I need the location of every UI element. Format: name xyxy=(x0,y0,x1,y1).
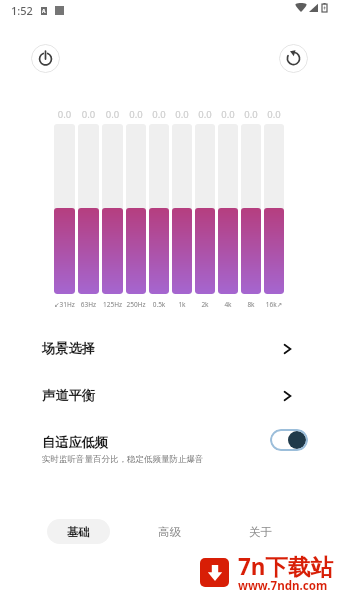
staticText: 0.0 xyxy=(102,108,123,121)
button[interactable] xyxy=(54,124,75,294)
button[interactable]: 声道平衡 xyxy=(0,372,338,419)
staticText: 125Hz xyxy=(102,300,123,309)
button[interactable] xyxy=(218,124,238,294)
button[interactable] xyxy=(126,124,146,294)
button[interactable] xyxy=(241,124,261,294)
staticText: 关于 xyxy=(249,525,272,539)
staticText: 0.0 xyxy=(149,108,169,121)
button[interactable]: 高级 xyxy=(138,519,201,544)
staticText: 2k xyxy=(195,300,215,309)
staticText: 自适应低频 xyxy=(42,434,108,451)
button[interactable]: 场景选择 xyxy=(0,325,338,372)
staticText: www.7ndn.com xyxy=(238,578,328,594)
staticText: ↙31Hz xyxy=(54,300,75,309)
staticText: 16k↗ xyxy=(264,300,284,309)
staticText: 250Hz xyxy=(126,300,146,309)
staticText: 场景选择 xyxy=(42,340,95,357)
staticText: 高级 xyxy=(158,525,181,539)
staticText: 1:52 xyxy=(11,3,33,18)
staticText: 0.0 xyxy=(126,108,146,121)
staticText: 8k xyxy=(241,300,261,309)
staticText: 0.0 xyxy=(218,108,238,121)
button[interactable]: 自适应低频 xyxy=(0,419,338,463)
button[interactable]: Power xyxy=(31,44,60,73)
button[interactable] xyxy=(264,124,284,294)
staticText: 0.0 xyxy=(241,108,261,121)
staticText: 0.0 xyxy=(78,108,99,121)
staticText: 0.0 xyxy=(172,108,192,121)
staticText: 7n下载站 xyxy=(238,551,333,582)
button[interactable]: Reset xyxy=(279,44,308,73)
staticText: 0.0 xyxy=(264,108,284,121)
staticText: 1k xyxy=(172,300,192,309)
button[interactable] xyxy=(149,124,169,294)
button[interactable] xyxy=(195,124,215,294)
button[interactable]: 基础 xyxy=(47,519,110,544)
staticText: 4k xyxy=(218,300,238,309)
staticText: 声道平衡 xyxy=(42,387,95,404)
staticText: 实时监听音量百分比，稳定低频量防止爆音 xyxy=(42,454,204,465)
staticText: 63Hz xyxy=(78,300,99,309)
button[interactable] xyxy=(78,124,99,294)
staticText: A xyxy=(42,8,46,15)
button[interactable] xyxy=(102,124,123,294)
staticText: 0.5k xyxy=(149,300,169,309)
button[interactable]: 关于 xyxy=(229,519,292,544)
button[interactable] xyxy=(172,124,192,294)
staticText: 0.0 xyxy=(54,108,75,121)
staticText: 基础 xyxy=(67,525,90,539)
staticText: 0.0 xyxy=(195,108,215,121)
